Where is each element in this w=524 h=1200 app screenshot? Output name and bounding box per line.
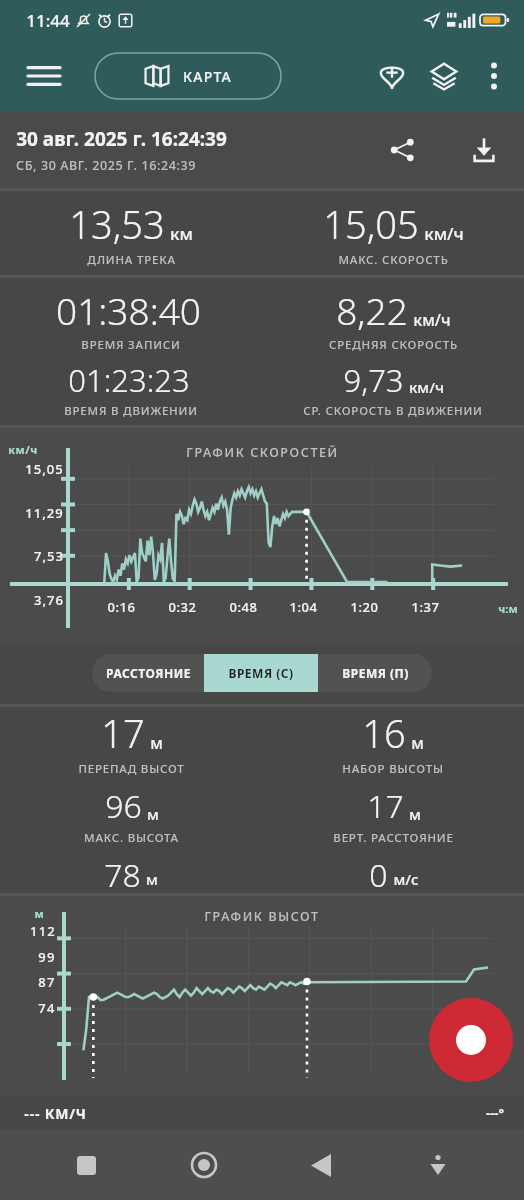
staticText: ВЕРТ. РАССТОЯНИЕ [333, 830, 454, 846]
staticText: --- КМ/Ч [24, 1104, 87, 1123]
staticText: ДЛИНА ТРЕКА [87, 252, 176, 268]
staticText: ВРЕМЯ (С) [228, 665, 294, 681]
staticText: 112 [30, 922, 56, 940]
staticText: м [409, 804, 421, 824]
button[interactable]: More options [470, 52, 518, 100]
staticText: 1:04 [289, 598, 318, 616]
staticText: 17 [367, 784, 404, 828]
staticText: 15,05 [323, 198, 419, 250]
staticText: 3,76 [34, 591, 64, 609]
staticText: 1:20 [350, 598, 379, 616]
staticText: 1:37 [411, 598, 440, 616]
staticText: 11,29 [25, 504, 64, 522]
staticText: 0 [369, 853, 388, 893]
staticText: 9,73 [343, 359, 404, 401]
staticText: 15,05 [25, 460, 64, 478]
staticText: СРЕДНЯЯ СКОРОСТЬ [329, 337, 458, 353]
button[interactable]: Layers [418, 50, 470, 102]
staticText: 96 [105, 784, 142, 828]
button[interactable]: ВРЕМЯ (С) [204, 654, 318, 692]
staticText: 17 [101, 707, 145, 759]
button[interactable]: Record [429, 998, 513, 1082]
staticText: 8,22 [336, 285, 408, 335]
staticText: СР. СКОРОСТЬ В ДВИЖЕНИИ [303, 403, 483, 419]
staticText: 7,53 [34, 547, 64, 565]
staticText: км/ч [8, 442, 38, 457]
staticText: км/ч [413, 309, 451, 331]
button[interactable]: Download [456, 122, 512, 178]
staticText: 74 [38, 999, 56, 1017]
button[interactable]: Add waypoint [366, 50, 418, 102]
staticText: км [170, 222, 193, 245]
staticText: 0:48 [229, 598, 258, 616]
staticText: 11:44 [26, 9, 70, 32]
button[interactable]: РАССТОЯНИЕ [92, 654, 204, 692]
staticText: ч:м [498, 601, 518, 616]
staticText: 01:38:40 [56, 285, 201, 335]
staticText: км/ч [424, 222, 464, 245]
staticText: ПЕРЕПАД ВЫСОТ [78, 761, 185, 777]
staticText: 16 [362, 707, 406, 759]
button[interactable]: Home [145, 1130, 262, 1200]
staticText: 78 [104, 853, 141, 893]
staticText: КАРТА [183, 67, 232, 86]
staticText: 0:32 [168, 598, 197, 616]
staticText: НАБОР ВЫСОТЫ [342, 761, 444, 777]
staticText: ГРАФИК СКОРОСТЕЙ [186, 444, 339, 461]
staticText: ВРЕМЯ ЗАПИСИ [81, 337, 181, 353]
staticText: ВРЕМЯ (П) [342, 665, 409, 681]
staticText: м [411, 732, 424, 754]
staticText: ---° [486, 1104, 504, 1122]
staticText: РАССТОЯНИЕ [106, 665, 191, 681]
staticText: ВРЕМЯ В ДВИЖЕНИИ [64, 403, 198, 419]
staticText: 99 [38, 948, 56, 966]
staticText: МАКС. ВЫСОТА [84, 830, 179, 846]
staticText: 0:16 [107, 598, 136, 616]
staticText: м [147, 804, 159, 824]
staticText: 13,53 [69, 198, 165, 250]
button[interactable]: Back [262, 1130, 379, 1200]
staticText: м/с [393, 869, 419, 889]
button[interactable]: ВРЕМЯ (П) [318, 654, 432, 692]
button[interactable]: Menu [18, 50, 70, 102]
staticText: 87 [38, 973, 56, 991]
staticText: км/ч [409, 377, 444, 397]
button[interactable]: Hide keyboard [379, 1130, 496, 1200]
staticText: СБ, 30 АВГ. 2025 Г. 16:24:39 [16, 157, 196, 174]
staticText: ГРАФИК ВЫСОТ [204, 908, 320, 925]
staticText: м [146, 869, 158, 889]
button[interactable]: Recents [28, 1130, 145, 1200]
staticText: м [34, 906, 44, 921]
button[interactable]: КАРТА [95, 53, 281, 99]
staticText: м [150, 732, 163, 754]
staticText: 01:23:23 [68, 359, 190, 401]
button[interactable]: Share [374, 122, 430, 178]
staticText: МАКС. СКОРОСТЬ [338, 252, 449, 268]
staticText: 30 авг. 2025 г. 16:24:39 [16, 126, 227, 152]
